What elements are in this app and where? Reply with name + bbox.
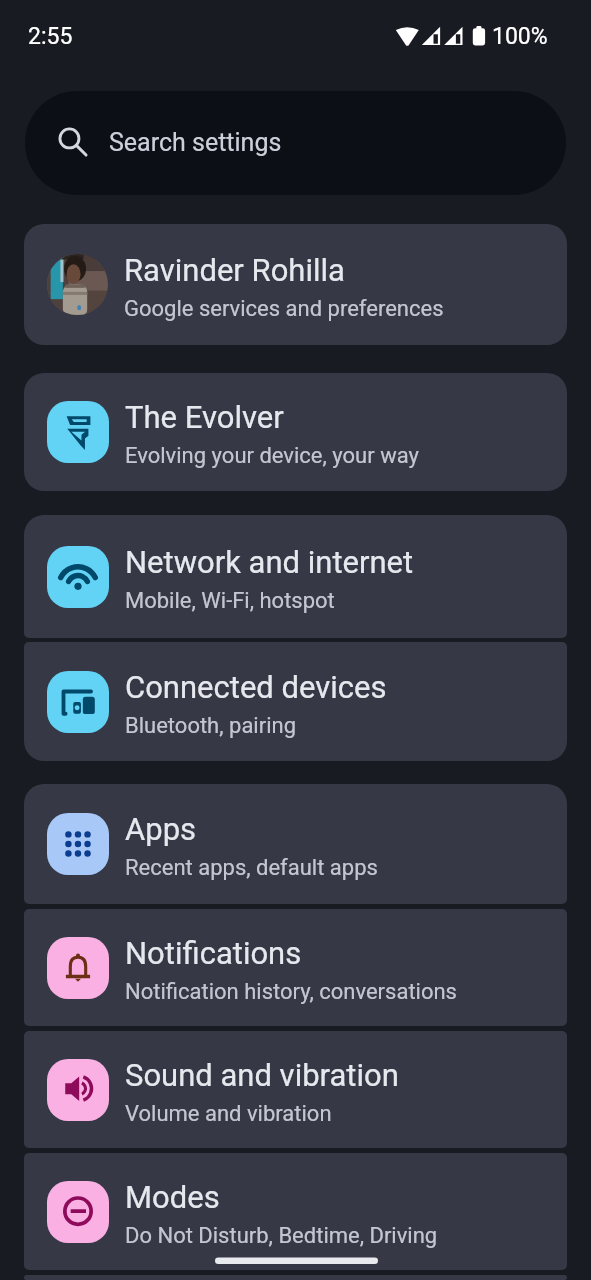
staticText: The Evolver bbox=[125, 399, 284, 435]
staticText: Do Not Disturb, Bedtime, Driving bbox=[125, 1223, 438, 1249]
button[interactable]: Notifications bbox=[24, 909, 567, 1026]
staticText: Mobile, Wi-Fi, hotspot bbox=[125, 588, 335, 614]
staticText: Volume and vibration bbox=[125, 1101, 332, 1127]
staticText: Connected devices bbox=[125, 669, 387, 705]
staticText: Sound and vibration bbox=[125, 1057, 399, 1093]
staticText: Modes bbox=[125, 1179, 220, 1215]
staticText: Notification history, conversations bbox=[125, 979, 457, 1005]
staticText: Notifications bbox=[125, 935, 302, 971]
staticText: 100% bbox=[492, 23, 548, 50]
button[interactable]: Search settings bbox=[25, 91, 566, 195]
button[interactable]: Sound and vibration bbox=[24, 1031, 567, 1148]
staticText: Evolving your device, your way bbox=[125, 443, 419, 469]
button[interactable]: The Evolver bbox=[24, 373, 567, 491]
button[interactable]: Apps bbox=[24, 784, 567, 904]
staticText: Ravinder Rohilla bbox=[124, 252, 345, 288]
staticText: Recent apps, default apps bbox=[125, 855, 378, 881]
staticText: 2:55 bbox=[28, 23, 73, 50]
button[interactable]: Connected devices bbox=[24, 642, 567, 761]
staticText: Apps bbox=[125, 811, 197, 847]
button[interactable]: Ravinder Rohilla bbox=[24, 224, 567, 345]
staticText: Network and internet bbox=[125, 544, 414, 580]
staticText: Bluetooth, pairing bbox=[125, 713, 297, 739]
staticText: Google services and preferences bbox=[124, 296, 444, 322]
button[interactable]: Network and internet bbox=[24, 515, 567, 638]
staticText: Search settings bbox=[109, 128, 282, 157]
button[interactable]: Modes bbox=[24, 1153, 567, 1270]
